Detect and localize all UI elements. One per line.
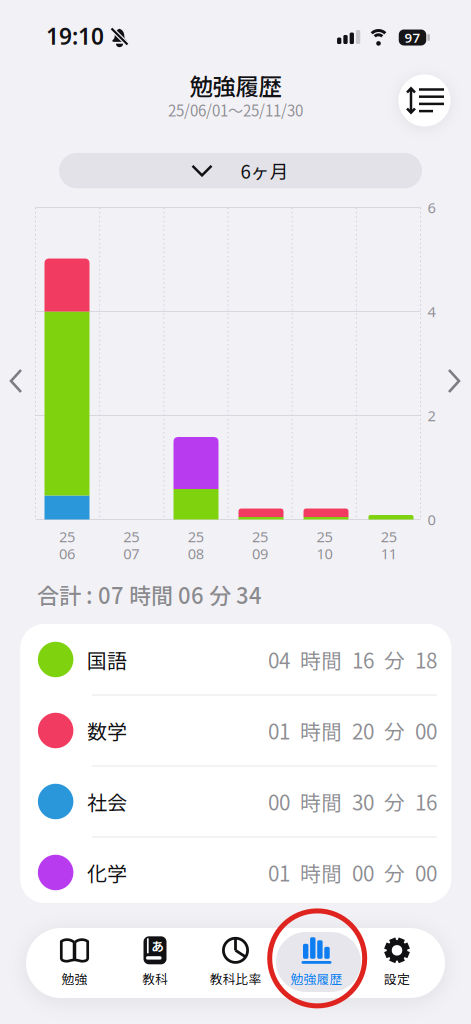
button[interactable]: 次の期間 <box>439 359 469 403</box>
staticText: 01 時間 00 分 00 <box>268 857 437 887</box>
staticText: 勉強 <box>61 969 87 988</box>
button[interactable]: 教科比率 <box>195 931 275 993</box>
staticText: 教科 <box>142 969 168 988</box>
staticText: 25 <box>59 527 75 546</box>
staticText: 00 時間 30 分 16 <box>268 786 437 816</box>
staticText: 数学 <box>87 716 127 745</box>
staticText: 10 <box>316 544 332 563</box>
staticText: 4 <box>427 302 435 321</box>
button[interactable]: 勉強履歴 <box>276 931 356 993</box>
staticText: 国語 <box>87 645 127 674</box>
button[interactable]: 前の期間 <box>1 359 31 403</box>
staticText: 2 <box>427 406 435 425</box>
staticText: 25 <box>252 527 268 546</box>
staticText: 01 時間 20 分 00 <box>268 715 437 745</box>
staticText: 19:10 <box>46 21 104 51</box>
staticText: 6ヶ月 <box>240 157 288 184</box>
button[interactable]: あ <box>115 931 195 993</box>
staticText: 化学 <box>87 858 127 887</box>
staticText: 08 <box>188 544 204 563</box>
staticText: 勉強履歴 <box>189 68 281 102</box>
staticText: 勉強履歴 <box>290 969 342 988</box>
button[interactable]: 6ヶ月 <box>59 153 422 188</box>
staticText: 11 <box>381 544 397 563</box>
staticText: 25 <box>381 527 397 546</box>
staticText: 06 <box>59 544 75 563</box>
staticText: 25 <box>188 527 204 546</box>
staticText: 97 <box>404 29 420 46</box>
staticText: 合計 : 07 時間 06 分 34 <box>37 579 262 610</box>
staticText: 07 <box>123 544 139 563</box>
staticText: 25 <box>123 527 139 546</box>
staticText: あ <box>151 937 164 955</box>
staticText: 教科比率 <box>209 969 261 988</box>
staticText: 社会 <box>87 787 127 816</box>
staticText: 25/06/01～25/11/30 <box>168 99 303 121</box>
button[interactable]: 設定 <box>357 931 437 993</box>
staticText: 25 <box>316 527 332 546</box>
staticText: 設定 <box>384 969 410 988</box>
staticText: 04 時間 16 分 18 <box>268 644 437 674</box>
staticText: 6 <box>427 198 435 217</box>
staticText: 09 <box>252 544 268 563</box>
button[interactable]: 勉強 <box>34 931 114 993</box>
staticText: 0 <box>427 510 435 529</box>
button[interactable]: 並び替え <box>398 74 450 126</box>
